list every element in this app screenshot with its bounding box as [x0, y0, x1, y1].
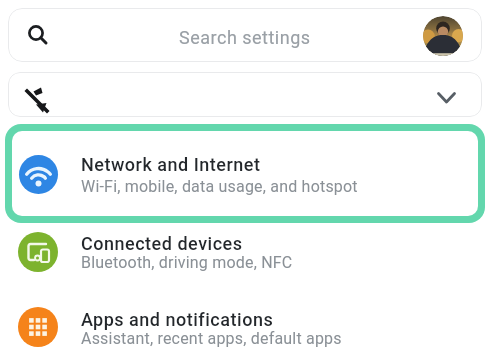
- staticText: Apps and notifications: [81, 309, 274, 330]
- button[interactable]: [423, 16, 463, 56]
- staticText: Wi-Fi, mobile, data usage, and hotspot: [81, 177, 358, 196]
- button[interactable]: Connected devices: [0, 228, 490, 276]
- button[interactable]: [8, 72, 482, 117]
- staticText: Assistant, recent apps, default apps: [81, 329, 342, 348]
- staticText: Network and Internet: [81, 154, 261, 175]
- button[interactable]: Search settings: [8, 8, 482, 62]
- button[interactable]: Network and Internet: [5, 124, 485, 223]
- button[interactable]: Apps and notifications: [0, 303, 490, 351]
- staticText: Connected devices: [81, 233, 243, 254]
- staticText: Search settings: [179, 27, 311, 48]
- staticText: Bluetooth, driving mode, NFC: [81, 253, 293, 272]
